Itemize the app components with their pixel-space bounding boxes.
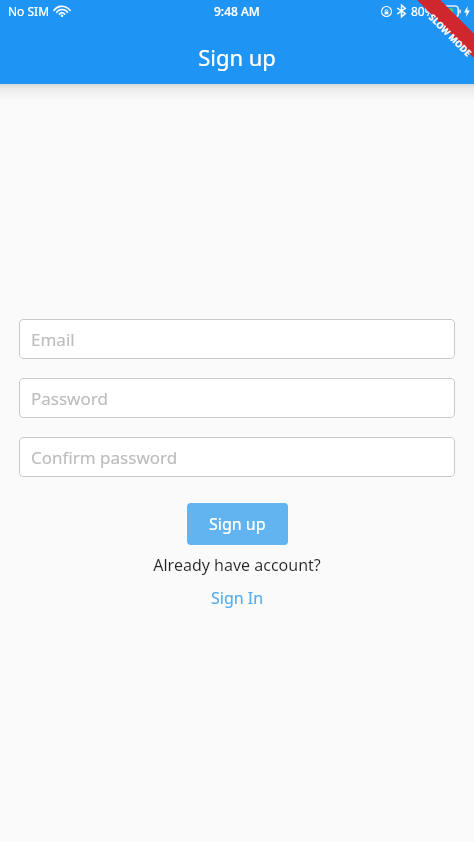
staticText: No SIM bbox=[8, 3, 50, 19]
staticText: Email bbox=[31, 328, 75, 351]
staticText: 9:48 AM bbox=[214, 3, 260, 19]
button[interactable]: Sign up bbox=[187, 503, 288, 545]
staticText: Password bbox=[31, 387, 108, 410]
staticText: Sign In bbox=[211, 587, 264, 609]
staticText: 80% bbox=[411, 3, 435, 19]
staticText: Sign up bbox=[209, 513, 266, 535]
button[interactable]: Sign In bbox=[205, 585, 270, 611]
button[interactable]: Password bbox=[19, 378, 455, 418]
staticText: Sign up bbox=[0, 42, 474, 72]
button[interactable]: Confirm password bbox=[19, 437, 455, 477]
staticText: SLOW MODE bbox=[427, 11, 474, 59]
button[interactable]: Email bbox=[19, 319, 455, 359]
staticText: Already have account? bbox=[0, 554, 474, 576]
staticText: Confirm password bbox=[31, 446, 178, 469]
